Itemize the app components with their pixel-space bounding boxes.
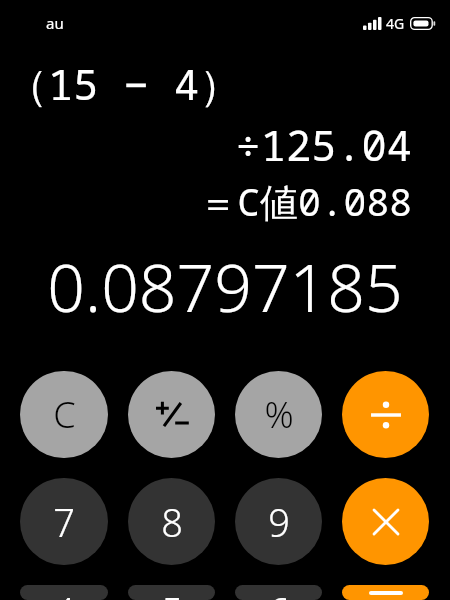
staticText: ÷125.04 <box>0 116 412 173</box>
staticText: 4G <box>386 14 405 33</box>
staticText: 8 <box>161 496 183 548</box>
button[interactable]: 9 <box>235 478 322 565</box>
staticText: 5 <box>161 585 183 600</box>
staticText: 7 <box>53 496 75 548</box>
button[interactable]: 7 <box>20 478 108 565</box>
button[interactable]: 6 <box>235 585 322 600</box>
button[interactable]: Multiply <box>342 478 429 565</box>
button[interactable]: Divide <box>342 371 429 458</box>
staticText: （15 − 4） <box>6 55 450 112</box>
staticText: 6 <box>268 585 290 600</box>
staticText: 4 <box>53 585 75 600</box>
button[interactable]: 4 <box>20 585 108 600</box>
button[interactable]: Minus <box>342 585 429 600</box>
staticText: % <box>264 390 294 439</box>
staticText: 9 <box>268 496 290 548</box>
button[interactable]: 5 <box>128 585 215 600</box>
staticText: 0.08797185 <box>18 241 432 331</box>
button[interactable]: Plus minus sign toggle <box>128 371 215 458</box>
staticText: C <box>53 390 76 439</box>
staticText: ＝C値0.088 <box>0 175 412 227</box>
button[interactable]: 8 <box>128 478 215 565</box>
button[interactable]: % <box>235 371 322 458</box>
staticText: au <box>46 13 64 33</box>
button[interactable]: C <box>20 371 108 458</box>
